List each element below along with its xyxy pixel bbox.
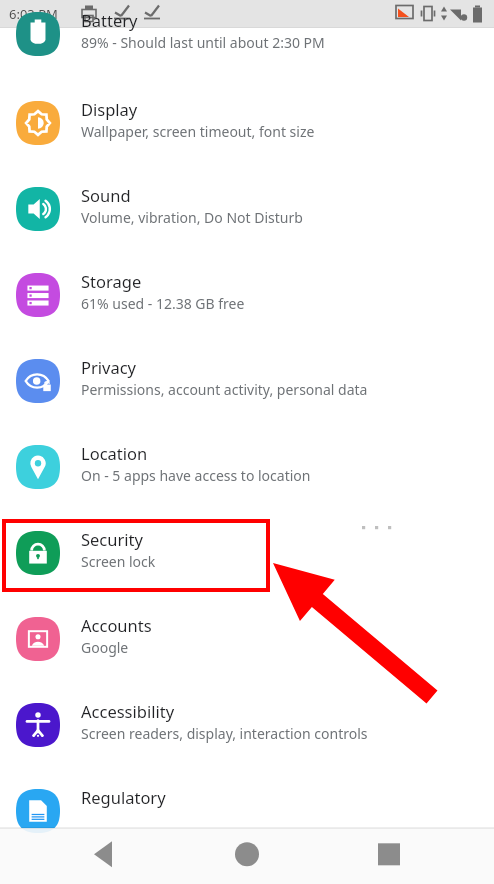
button[interactable]: Security [0,516,494,602]
staticText: 6:03 PM [9,5,58,23]
button[interactable]: Accounts [0,602,494,688]
staticText: Volume, vibration, Do Not Disturb [81,208,303,227]
staticText: 61% used - 12.38 GB free [81,294,245,313]
staticText: Security [81,528,143,550]
button[interactable]: Location [0,430,494,516]
button[interactable]: Sound [0,172,494,258]
button[interactable]: Back [0,828,164,884]
button[interactable]: Accessibility [0,688,494,774]
staticText: On - 5 apps have access to location [81,466,311,485]
staticText: 89% - Should last until about 2:30 PM [81,33,325,52]
staticText: Accessibility [81,700,175,722]
staticText: Display [81,98,138,120]
button[interactable]: Home [164,828,329,884]
staticText: Permissions, account activity, personal … [81,380,368,399]
staticText: Google [81,638,129,657]
button[interactable]: Display [0,86,494,172]
button[interactable]: Regulatory [0,774,494,860]
button[interactable]: Storage [0,258,494,344]
staticText: Privacy [81,356,137,378]
button[interactable]: Battery [0,28,494,86]
button[interactable]: Recent apps [329,828,494,884]
button[interactable]: Privacy [0,344,494,430]
staticText: Wallpaper, screen timeout, font size [81,122,315,141]
staticText: Storage [81,270,142,292]
staticText: Screen readers, display, interaction con… [81,724,368,743]
staticText: Regulatory [81,786,166,808]
staticText: Screen lock [81,552,156,571]
staticText: Battery [81,9,138,31]
staticText: Location [81,442,148,464]
staticText: Accounts [81,614,152,636]
staticText: Sound [81,184,131,206]
